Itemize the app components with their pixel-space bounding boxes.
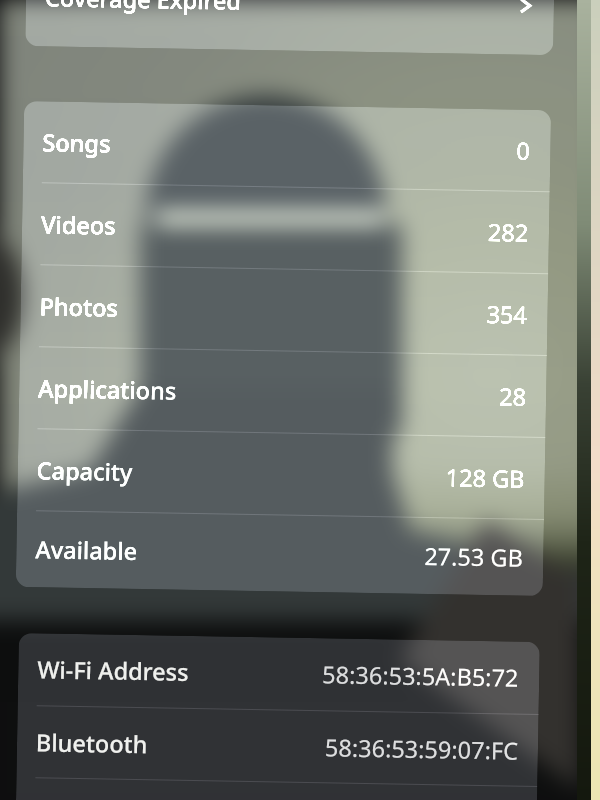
staticText: Photos <box>39 290 119 324</box>
staticText: Coverage Expired <box>45 0 242 17</box>
staticText: Bluetooth <box>36 726 148 760</box>
staticText: 58:36:53:59:07:FC <box>325 731 518 767</box>
staticText: Wi-Fi Address <box>37 653 189 688</box>
staticText: Available <box>35 533 138 567</box>
button[interactable]: Capacity <box>17 429 545 519</box>
staticText: Songs <box>42 126 112 159</box>
button[interactable]: Photos <box>20 265 548 355</box>
staticText: 354 <box>486 298 528 331</box>
staticText: 27.53 GB <box>424 540 524 574</box>
staticText: 128 GB <box>445 461 525 495</box>
staticText: Capacity <box>36 454 133 488</box>
staticText: 58:36:53:5A:B5:72 <box>322 658 519 694</box>
button[interactable]: Bluetooth <box>16 706 539 786</box>
button[interactable]: Available <box>16 511 544 595</box>
staticText: 28 <box>499 380 526 413</box>
other: Open <box>518 0 534 14</box>
staticText: 0 <box>516 135 531 167</box>
button[interactable]: Wi-Fi Address <box>18 633 540 714</box>
button[interactable]: Applications <box>18 347 547 437</box>
staticText: Applications <box>38 372 177 407</box>
button[interactable]: Songs <box>23 101 551 191</box>
button[interactable]: Videos <box>21 183 550 273</box>
staticText: 282 <box>488 216 529 249</box>
button[interactable]: Coverage Expired <box>26 0 554 29</box>
staticText: Videos <box>41 208 116 242</box>
